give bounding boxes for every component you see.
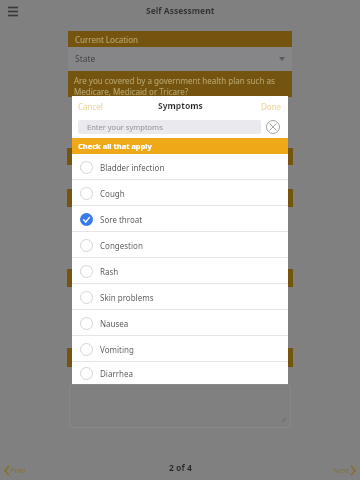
staticText: Congestion — [100, 240, 143, 251]
button[interactable]: State — [68, 47, 292, 71]
button[interactable]: Cough — [72, 180, 288, 206]
staticText: Done — [261, 101, 282, 112]
staticText: Enter your symptoms — [87, 122, 163, 132]
staticText: Check all that apply — [78, 141, 152, 151]
staticText: Vomiting — [100, 344, 134, 355]
button[interactable]: Done — [258, 98, 285, 115]
staticText: 2 of 4 — [169, 462, 192, 474]
staticText: Next — [333, 465, 350, 475]
button[interactable]: Sore throat — [72, 206, 288, 232]
button[interactable]: Enter your symptoms — [78, 120, 261, 134]
staticText: Current Location — [75, 34, 138, 45]
staticText: Nausea — [100, 318, 129, 329]
button[interactable]: Nausea — [72, 310, 288, 336]
staticText: Prev — [10, 465, 26, 475]
staticText: Cancel — [78, 101, 103, 112]
button[interactable]: Cancel — [75, 98, 106, 115]
button[interactable]: Open navigation menu — [1, 0, 25, 21]
button[interactable]: Bladder infection — [72, 154, 288, 180]
staticText: Bladder infection — [100, 162, 165, 173]
button[interactable]: Rash — [72, 258, 288, 284]
button[interactable]: Skin problems — [72, 284, 288, 310]
staticText: Cough — [100, 188, 125, 199]
staticText: Are you covered by a government health p… — [74, 75, 286, 97]
staticText: Rash — [100, 266, 119, 277]
button[interactable]: Next — [331, 463, 358, 477]
staticText: Sore throat — [100, 214, 143, 225]
staticText: State — [75, 53, 96, 65]
staticText: Self Assessment — [146, 5, 215, 17]
staticText: Symptoms — [158, 100, 203, 112]
button[interactable]: Congestion — [72, 232, 288, 258]
button[interactable]: Diarrhea — [72, 362, 288, 384]
staticText: Skin problems — [100, 292, 154, 303]
button[interactable]: Clear search text — [264, 118, 282, 136]
staticText: Diarrhea — [100, 368, 133, 379]
button[interactable]: Vomiting — [72, 336, 288, 362]
button[interactable]: Prev — [2, 463, 28, 477]
